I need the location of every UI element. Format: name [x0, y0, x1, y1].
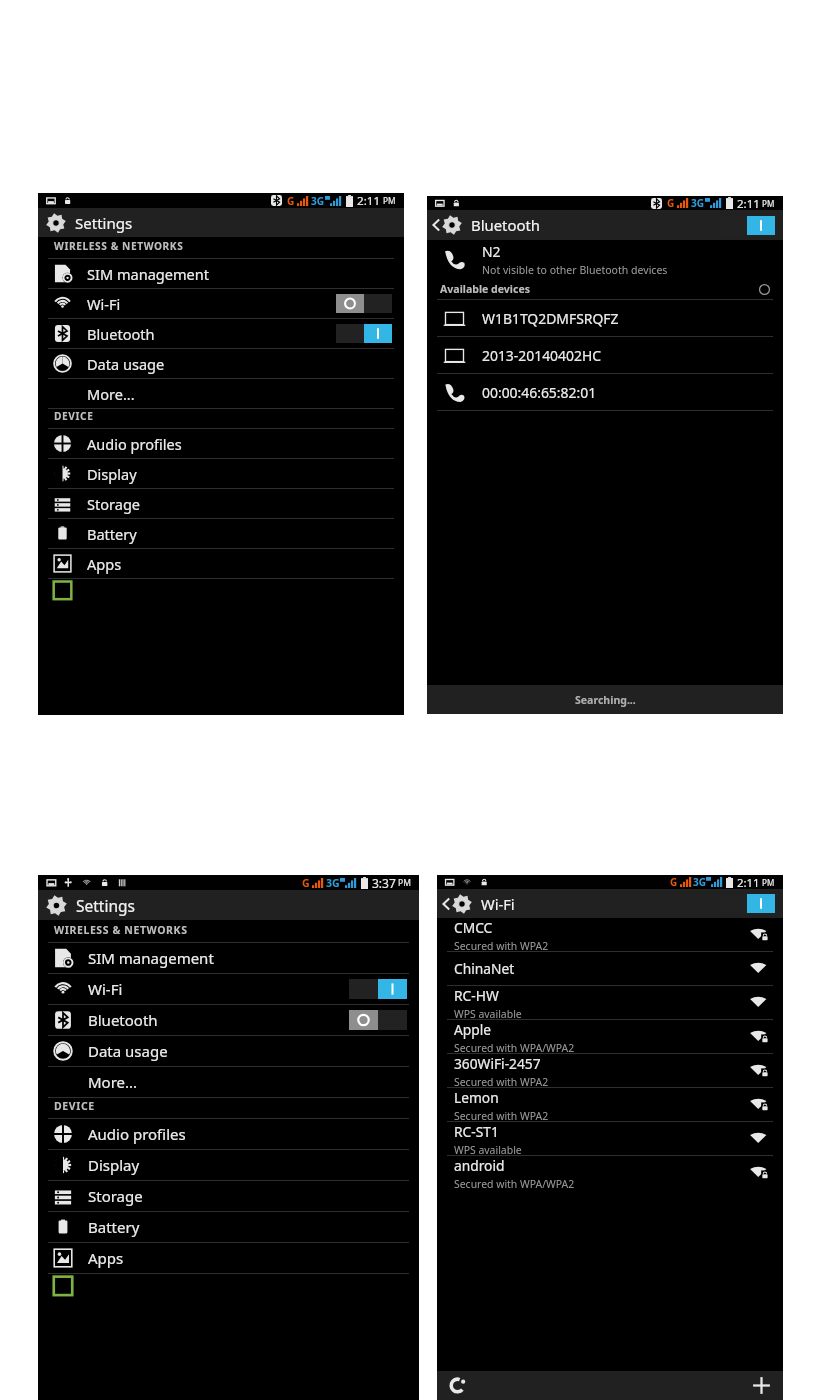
- button[interactable]: Apps: [38, 1243, 419, 1274]
- staticText: Bluetooth: [88, 1010, 158, 1030]
- button[interactable]: Apple: [437, 1020, 783, 1054]
- staticText: CMCC: [454, 918, 493, 937]
- staticText: Data usage: [87, 354, 165, 374]
- staticText: Settings: [76, 895, 135, 916]
- button[interactable]: Wi-Fi: [38, 289, 404, 319]
- staticText: Not visible to other Bluetooth devices: [482, 263, 668, 277]
- staticText: 360WiFi-2457: [454, 1054, 541, 1073]
- staticText: Lemon: [454, 1088, 499, 1107]
- button[interactable]: [38, 579, 404, 608]
- button[interactable]: 00:00:46:65:82:01: [427, 374, 783, 411]
- button[interactable]: Display: [38, 459, 404, 489]
- button[interactable]: 360WiFi-2457: [437, 1054, 783, 1088]
- button[interactable]: Audio profiles: [38, 429, 404, 459]
- staticText: Storage: [87, 494, 141, 514]
- button[interactable]: [349, 1010, 407, 1030]
- staticText: 2:11: [737, 875, 760, 889]
- staticText: DEVICE: [54, 1099, 95, 1113]
- staticText: 2:11: [737, 196, 760, 210]
- button[interactable]: 2013-20140402HC: [427, 337, 783, 374]
- staticText: Bluetooth: [471, 215, 541, 235]
- staticText: SIM management: [88, 948, 214, 968]
- staticText: DEVICE: [54, 409, 94, 423]
- button[interactable]: [38, 1274, 419, 1304]
- staticText: More...: [87, 384, 135, 404]
- button[interactable]: [349, 979, 407, 999]
- button[interactable]: Battery: [38, 519, 404, 549]
- button[interactable]: [719, 216, 775, 235]
- button[interactable]: SIM management: [38, 943, 419, 974]
- button[interactable]: RC-HW: [437, 986, 783, 1020]
- staticText: Apps: [88, 1248, 124, 1268]
- staticText: 3G: [326, 876, 340, 890]
- staticText: Available devices: [440, 282, 531, 296]
- staticText: Audio profiles: [87, 434, 182, 454]
- staticText: Apps: [87, 554, 122, 574]
- staticText: Secured with WPA/WPA2: [454, 1041, 575, 1053]
- button[interactable]: N2: [427, 240, 783, 278]
- staticText: Battery: [88, 1217, 140, 1237]
- button[interactable]: Data usage: [38, 349, 404, 379]
- button[interactable]: More...: [38, 1067, 419, 1098]
- staticText: PM: [762, 198, 775, 209]
- button[interactable]: Display: [38, 1150, 419, 1181]
- button[interactable]: RC-ST1: [437, 1122, 783, 1156]
- button[interactable]: Add network: [751, 1375, 772, 1396]
- button[interactable]: [336, 324, 392, 343]
- staticText: Data usage: [88, 1041, 168, 1061]
- button[interactable]: Storage: [38, 489, 404, 519]
- button[interactable]: SIM management: [38, 259, 404, 289]
- staticText: ChinaNet: [454, 959, 515, 978]
- staticText: Storage: [88, 1186, 143, 1206]
- button[interactable]: Wi-Fi: [38, 974, 419, 1005]
- staticText: Wi-Fi: [481, 894, 515, 914]
- staticText: Wi-Fi: [87, 294, 121, 314]
- staticText: 3G: [311, 194, 325, 208]
- staticText: PM: [762, 877, 775, 888]
- staticText: Settings: [75, 213, 133, 233]
- button[interactable]: Scan: [447, 1375, 468, 1396]
- staticText: WPS available: [454, 1007, 522, 1019]
- button[interactable]: [336, 294, 392, 313]
- staticText: Secured with WPA2: [454, 1109, 549, 1121]
- staticText: 2:11: [357, 193, 381, 208]
- staticText: SIM management: [87, 264, 210, 284]
- button[interactable]: android: [437, 1156, 783, 1189]
- staticText: WPS available: [454, 1143, 522, 1155]
- staticText: W1B1TQ2DMFSRQFZ: [482, 309, 619, 328]
- button[interactable]: Searching...: [427, 685, 783, 714]
- button[interactable]: Bluetooth: [38, 1005, 419, 1036]
- staticText: 3:37: [372, 875, 396, 890]
- staticText: More...: [88, 1072, 138, 1092]
- button[interactable]: [720, 894, 775, 913]
- button[interactable]: W1B1TQ2DMFSRQFZ: [427, 300, 783, 337]
- staticText: PM: [398, 877, 411, 889]
- button[interactable]: More...: [38, 379, 404, 409]
- staticText: PM: [383, 195, 396, 206]
- button[interactable]: Storage: [38, 1181, 419, 1212]
- button[interactable]: Lemon: [437, 1088, 783, 1122]
- staticText: Secured with WPA2: [454, 1075, 549, 1087]
- staticText: 00:00:46:65:82:01: [482, 383, 597, 402]
- button[interactable]: Battery: [38, 1212, 419, 1243]
- staticText: Display: [88, 1155, 140, 1175]
- staticText: WIRELESS & NETWORKS: [54, 239, 184, 253]
- button[interactable]: Audio profiles: [38, 1119, 419, 1150]
- button[interactable]: Bluetooth: [38, 319, 404, 349]
- staticText: Secured with WPA2: [454, 939, 549, 951]
- other: Back: [441, 899, 451, 909]
- staticText: android: [454, 1156, 505, 1175]
- staticText: Searching...: [575, 693, 636, 707]
- button[interactable]: Data usage: [38, 1036, 419, 1067]
- staticText: Apple: [454, 1020, 492, 1039]
- button[interactable]: ChinaNet: [437, 952, 783, 986]
- staticText: Display: [87, 464, 137, 484]
- staticText: 3G: [691, 196, 705, 210]
- staticText: 2013-20140402HC: [482, 346, 602, 365]
- button[interactable]: Apps: [38, 549, 404, 579]
- staticText: G: [667, 196, 675, 210]
- staticText: G: [302, 876, 310, 890]
- staticText: RC-ST1: [454, 1122, 499, 1141]
- staticText: G: [287, 194, 295, 208]
- button[interactable]: CMCC: [437, 918, 783, 952]
